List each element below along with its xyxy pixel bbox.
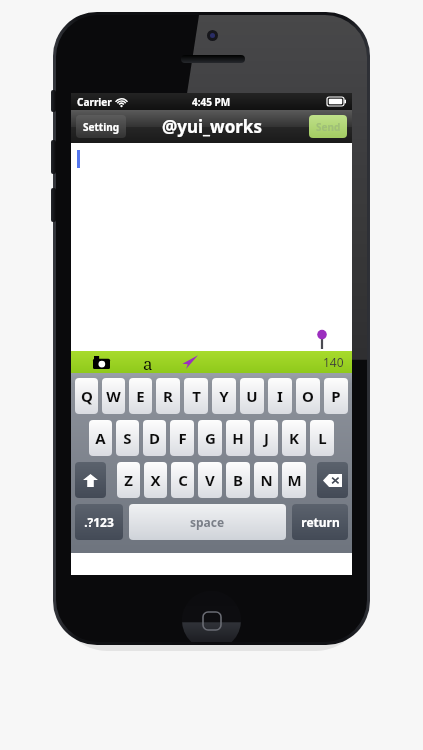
staticText: F: [178, 428, 187, 448]
staticText: Q: [81, 386, 93, 406]
staticText: V: [205, 470, 215, 490]
button[interactable]: Y: [212, 378, 236, 414]
button[interactable]: I: [268, 378, 292, 414]
staticText: 4:45 PM: [192, 95, 231, 109]
staticText: Send: [316, 120, 341, 134]
staticText: I: [277, 386, 283, 406]
button[interactable]: Camera: [89, 352, 113, 372]
staticText: G: [205, 428, 216, 448]
button[interactable]: B: [226, 462, 250, 498]
button[interactable]: Z: [117, 462, 140, 498]
button[interactable]: M: [282, 462, 306, 498]
staticText: E: [136, 386, 145, 406]
staticText: A: [95, 428, 106, 448]
staticText: D: [149, 428, 160, 448]
staticText: L: [318, 428, 327, 448]
staticText: X: [150, 470, 161, 490]
button[interactable]: Send: [309, 115, 347, 138]
button[interactable]: H: [226, 420, 250, 456]
button[interactable]: G: [198, 420, 222, 456]
button[interactable]: Setting: [76, 115, 126, 138]
button[interactable]: O: [296, 378, 320, 414]
staticText: Carrier: [77, 95, 112, 109]
staticText: return: [301, 514, 340, 530]
button[interactable]: P: [324, 378, 348, 414]
button[interactable]: Location: [175, 352, 201, 372]
button[interactable]: return: [292, 504, 348, 540]
staticText: 140: [323, 354, 344, 370]
button[interactable]: W: [102, 378, 125, 414]
staticText: Setting: [83, 120, 119, 134]
staticText: T: [192, 386, 201, 406]
button[interactable]: X: [144, 462, 167, 498]
staticText: J: [264, 428, 269, 448]
staticText: @yui_works: [162, 115, 262, 138]
button[interactable]: C: [171, 462, 194, 498]
button[interactable]: space: [129, 504, 286, 540]
button[interactable]: R: [156, 378, 180, 414]
button[interactable]: S: [116, 420, 139, 456]
staticText: N: [260, 470, 273, 490]
button[interactable]: J: [254, 420, 278, 456]
staticText: R: [163, 386, 173, 406]
staticText: W: [106, 386, 121, 406]
staticText: K: [289, 428, 299, 448]
staticText: Y: [219, 386, 229, 406]
staticText: C: [178, 470, 188, 490]
button[interactable]: D: [143, 420, 166, 456]
staticText: S: [123, 428, 132, 448]
button[interactable]: E: [129, 378, 152, 414]
button[interactable]: T: [184, 378, 208, 414]
staticText: M: [287, 470, 302, 490]
button[interactable]: U: [240, 378, 264, 414]
staticText: .?123: [84, 514, 114, 530]
button[interactable]: A: [89, 420, 112, 456]
staticText: Z: [124, 470, 133, 490]
button[interactable]: V: [198, 462, 222, 498]
button[interactable]: L: [310, 420, 334, 456]
staticText: O: [302, 386, 314, 406]
staticText: P: [331, 386, 341, 406]
button[interactable]: .?123: [75, 504, 123, 540]
button[interactable]: Q: [75, 378, 98, 414]
button[interactable]: Text style: [137, 352, 159, 372]
staticText: B: [233, 470, 243, 490]
button[interactable]: Shift: [75, 462, 106, 498]
button[interactable]: Backspace: [317, 462, 348, 498]
staticText: a: [143, 352, 153, 372]
button[interactable]: F: [170, 420, 194, 456]
button[interactable]: K: [282, 420, 306, 456]
staticText: U: [246, 386, 258, 406]
button[interactable]: N: [254, 462, 278, 498]
staticText: H: [232, 428, 244, 448]
staticText: space: [190, 514, 225, 530]
